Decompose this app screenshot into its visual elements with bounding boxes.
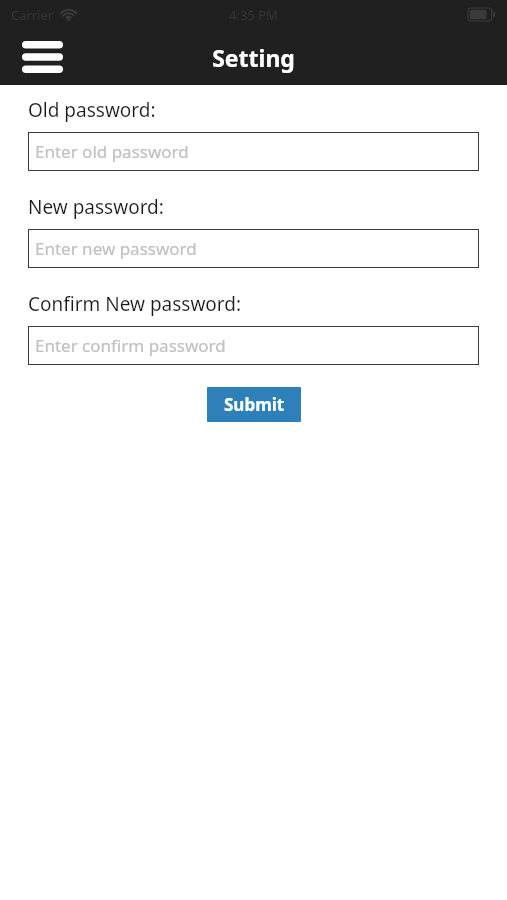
staticText: Enter new password (35, 237, 197, 260)
staticText: Confirm New password: (28, 291, 242, 317)
staticText: Carrier (11, 6, 54, 24)
staticText: Setting (212, 42, 295, 73)
staticText: 4:35 PM (229, 6, 278, 24)
button[interactable]: Enter confirm password (28, 326, 479, 365)
button[interactable]: Enter old password (28, 132, 479, 171)
button[interactable]: Enter new password (28, 229, 479, 268)
staticText: Enter confirm password (35, 334, 226, 357)
staticText: Enter old password (35, 140, 189, 163)
staticText: Old password: (28, 97, 156, 123)
staticText: Submit (224, 393, 285, 416)
button[interactable]: Submit (207, 387, 301, 422)
button[interactable]: Menu (14, 33, 70, 81)
staticText: New password: (28, 194, 164, 220)
